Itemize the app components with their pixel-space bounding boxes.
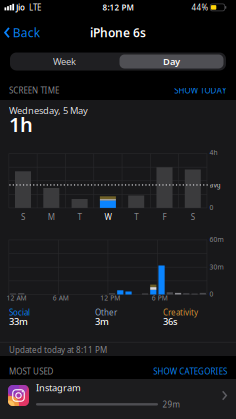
staticText: T xyxy=(134,212,138,222)
button[interactable]: Day xyxy=(118,52,225,70)
staticText: Updated today at 8:11 PM xyxy=(9,345,107,355)
staticText: 12 PM xyxy=(100,294,120,302)
staticText: 8:12 PM xyxy=(102,2,133,13)
staticText: SHOW CATEGORIES xyxy=(153,366,227,377)
button[interactable]: Back xyxy=(4,25,40,40)
staticText: Jio xyxy=(16,2,25,13)
staticText: S xyxy=(21,212,25,222)
staticText: 60m xyxy=(209,235,223,244)
staticText: 6 PM xyxy=(152,294,168,302)
staticText: W xyxy=(104,212,111,222)
staticText: T xyxy=(78,212,82,222)
button[interactable]: Week xyxy=(10,52,118,70)
staticText: F xyxy=(162,212,166,222)
staticText: 12 AM xyxy=(6,294,26,302)
button[interactable]: Instagram xyxy=(0,379,236,419)
staticText: LTE xyxy=(29,2,41,13)
button[interactable]: SHOW CATEGORIES xyxy=(153,366,227,377)
staticText: Other xyxy=(95,307,117,318)
staticText: MOST USED xyxy=(9,366,54,377)
staticText: Instagram xyxy=(36,381,81,394)
staticText: Wednesday, 5 May xyxy=(9,104,88,117)
staticText: Day xyxy=(163,55,180,68)
button[interactable]: SHOW TODAY xyxy=(174,85,227,96)
staticText: 44% xyxy=(191,2,208,13)
staticText: 4h xyxy=(209,148,217,157)
staticText: SCREEN TIME xyxy=(9,85,59,96)
staticText: Back xyxy=(13,25,40,40)
staticText: Creativity xyxy=(163,307,198,318)
staticText: 29m xyxy=(162,399,179,410)
staticText: Social xyxy=(9,307,30,318)
staticText: 6 AM xyxy=(53,294,69,302)
staticText: M xyxy=(48,212,55,222)
staticText: 36s xyxy=(163,315,178,328)
staticText: 0 xyxy=(209,203,213,212)
staticText: 3m xyxy=(95,315,109,328)
staticText: Week xyxy=(53,55,76,68)
staticText: 1h xyxy=(9,111,33,138)
staticText: 0 xyxy=(209,290,213,298)
staticText: S xyxy=(191,212,195,222)
staticText: avg xyxy=(209,181,220,189)
staticText: 33m xyxy=(9,315,28,328)
staticText: iPhone 6s xyxy=(90,25,146,40)
staticText: 30m xyxy=(209,263,223,271)
staticText: SHOW TODAY xyxy=(174,85,227,96)
